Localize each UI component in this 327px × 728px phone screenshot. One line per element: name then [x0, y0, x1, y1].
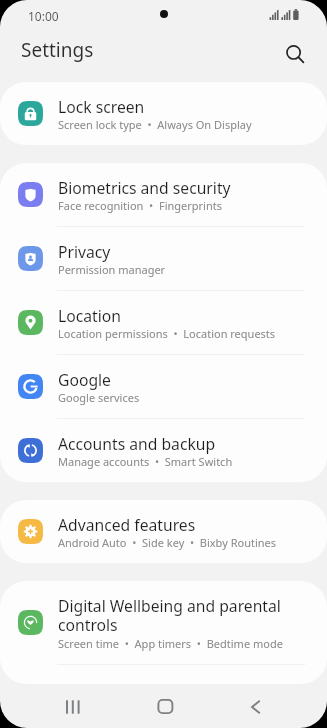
staticText: Google	[58, 369, 111, 390]
button[interactable]: Search	[277, 36, 313, 72]
staticText: Settings	[21, 37, 94, 63]
button[interactable]: Accounts and backup	[0, 419, 327, 482]
staticText: Lock screen	[58, 96, 145, 117]
staticText: Screen time • App timers • Bedtime mode	[58, 636, 283, 651]
staticText: Accounts and backup	[58, 433, 216, 454]
staticText: Screen lock type • Always On Display	[58, 117, 252, 132]
staticText: Location permissions • Location requests	[58, 326, 276, 341]
button[interactable]: Lock screen	[0, 82, 327, 145]
staticText: Digital Wellbeing and parental controls	[58, 595, 281, 636]
button[interactable]: Advanced features	[0, 500, 327, 563]
staticText: Biometrics and security	[58, 177, 231, 198]
button[interactable]: Privacy	[0, 227, 327, 290]
staticText: Advanced features	[58, 514, 196, 535]
staticText: Google services	[58, 390, 140, 405]
button[interactable]: Back	[209, 685, 300, 728]
staticText: Privacy	[58, 241, 111, 262]
staticText: Android Auto • Side key • Bixby Routines	[58, 535, 277, 550]
button[interactable]: Google	[0, 355, 327, 418]
button[interactable]: Recent apps	[27, 685, 118, 728]
staticText: Face recognition • Fingerprints	[58, 198, 222, 213]
staticText: Manage accounts • Smart Switch	[58, 454, 233, 469]
button[interactable]: Digital Wellbeing and parental controls	[0, 581, 327, 664]
button[interactable]: Home	[118, 685, 209, 728]
button[interactable]: Biometrics and security	[0, 163, 327, 226]
staticText: 10:00	[28, 8, 59, 24]
staticText: Permission manager	[58, 262, 166, 277]
button[interactable]: Location	[0, 291, 327, 354]
staticText: Location	[58, 305, 121, 326]
